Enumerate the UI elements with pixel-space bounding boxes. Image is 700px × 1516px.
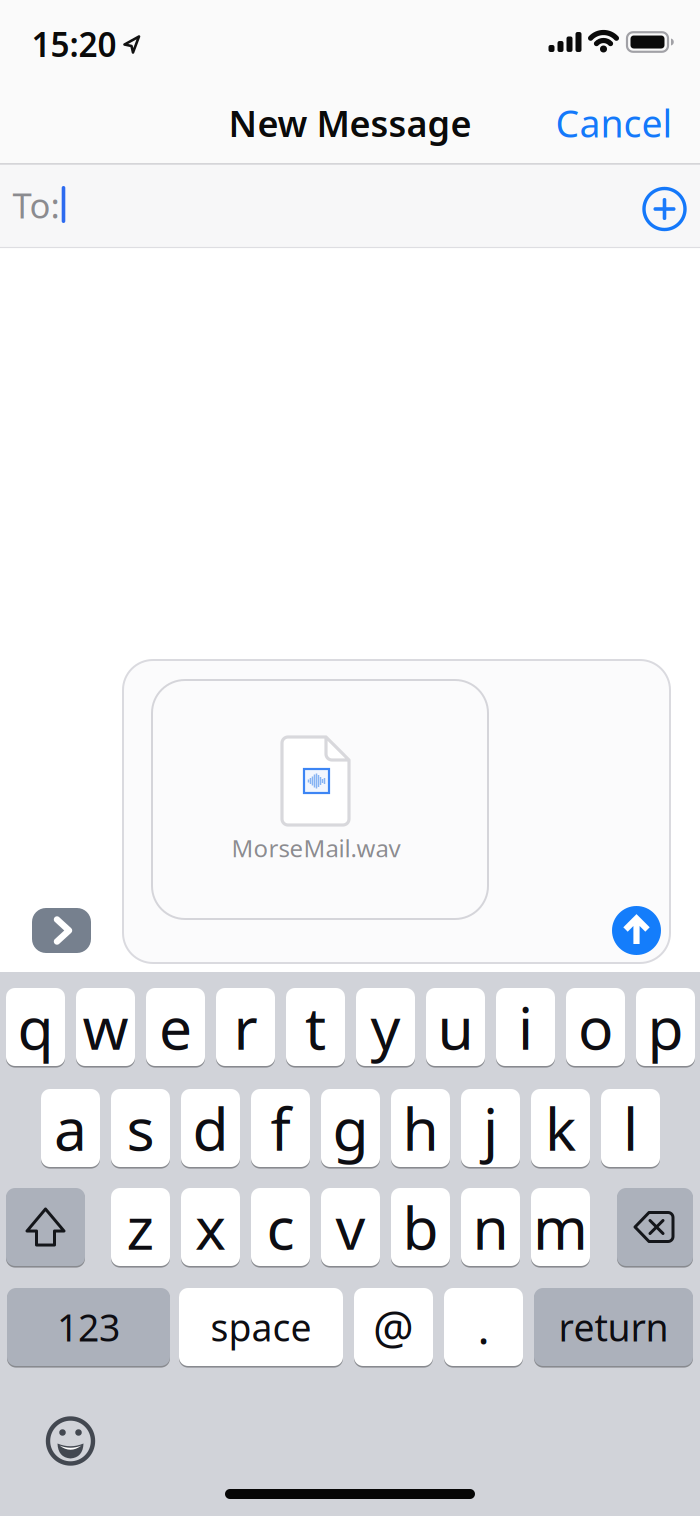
staticText: a bbox=[54, 1089, 87, 1167]
button[interactable]: Expand bbox=[32, 908, 91, 953]
staticText: z bbox=[126, 1188, 154, 1266]
staticText: g bbox=[332, 1089, 368, 1167]
button[interactable]: n bbox=[461, 1187, 520, 1267]
button[interactable]: @ bbox=[354, 1287, 433, 1367]
button[interactable]: v bbox=[321, 1187, 380, 1267]
button[interactable]: w bbox=[76, 987, 135, 1067]
staticText: MorseMail.wav bbox=[231, 832, 400, 864]
button[interactable]: s bbox=[111, 1088, 170, 1168]
staticText: r bbox=[233, 988, 257, 1066]
staticText: To: bbox=[12, 182, 59, 228]
button[interactable]: MorseMail.wav attachment bbox=[152, 680, 488, 919]
button[interactable]: Shift bbox=[6, 1187, 85, 1267]
staticText: c bbox=[266, 1188, 294, 1266]
button[interactable]: x bbox=[181, 1187, 240, 1267]
button[interactable]: b bbox=[391, 1187, 450, 1267]
button[interactable]: a bbox=[41, 1088, 100, 1168]
staticText: w bbox=[82, 988, 128, 1066]
staticText: s bbox=[126, 1089, 154, 1167]
button[interactable]: . bbox=[444, 1287, 523, 1367]
button[interactable]: h bbox=[391, 1088, 450, 1168]
button[interactable]: g bbox=[321, 1088, 380, 1168]
button[interactable]: 123 bbox=[7, 1287, 170, 1367]
button[interactable]: j bbox=[461, 1088, 520, 1168]
button[interactable]: f bbox=[251, 1088, 310, 1168]
button[interactable]: r bbox=[216, 987, 275, 1067]
staticText: o bbox=[578, 988, 613, 1066]
staticText: m bbox=[533, 1188, 588, 1266]
staticText: f bbox=[270, 1089, 290, 1167]
button[interactable]: z bbox=[111, 1187, 170, 1267]
button[interactable]: m bbox=[531, 1187, 590, 1267]
button[interactable]: t bbox=[286, 987, 345, 1067]
staticText: b bbox=[402, 1188, 438, 1266]
button[interactable]: e bbox=[146, 987, 205, 1067]
button[interactable]: o bbox=[566, 987, 625, 1067]
button[interactable]: Send bbox=[612, 906, 661, 955]
button[interactable]: Delete bbox=[617, 1187, 693, 1267]
button[interactable]: k bbox=[531, 1088, 590, 1168]
staticText: h bbox=[402, 1089, 438, 1167]
staticText: q bbox=[17, 988, 53, 1066]
staticText: p bbox=[647, 988, 683, 1066]
button[interactable]: p bbox=[636, 987, 695, 1067]
staticText: y bbox=[370, 988, 400, 1066]
button[interactable]: u bbox=[426, 987, 485, 1067]
staticText: 123 bbox=[57, 1302, 120, 1352]
staticText: k bbox=[545, 1089, 576, 1167]
staticText: t bbox=[305, 988, 326, 1066]
button[interactable]: d bbox=[181, 1088, 240, 1168]
staticText: i bbox=[518, 988, 533, 1066]
staticText: @ bbox=[373, 1297, 414, 1357]
button[interactable]: Cancel bbox=[547, 90, 680, 156]
staticText: 15:20 bbox=[31, 22, 116, 66]
button[interactable]: space bbox=[179, 1287, 343, 1367]
staticText: u bbox=[437, 988, 473, 1066]
button[interactable]: return bbox=[534, 1287, 693, 1367]
button[interactable]: i bbox=[496, 987, 555, 1067]
button[interactable]: q bbox=[6, 987, 65, 1067]
staticText: l bbox=[623, 1089, 638, 1167]
button[interactable]: l bbox=[601, 1088, 660, 1168]
button[interactable]: y bbox=[356, 987, 415, 1067]
staticText: Cancel bbox=[555, 98, 672, 148]
staticText: space bbox=[210, 1302, 311, 1352]
staticText: return bbox=[558, 1302, 668, 1352]
staticText: d bbox=[192, 1089, 228, 1167]
staticText: j bbox=[483, 1089, 498, 1167]
staticText: . bbox=[477, 1297, 489, 1357]
staticText: New Message bbox=[228, 99, 471, 147]
button[interactable]: c bbox=[251, 1187, 310, 1267]
staticText: v bbox=[335, 1188, 365, 1266]
button[interactable]: Emoji bbox=[46, 1416, 95, 1465]
button[interactable]: Add Contact bbox=[642, 187, 686, 231]
staticText: n bbox=[472, 1188, 508, 1266]
staticText: x bbox=[195, 1188, 226, 1266]
staticText: e bbox=[159, 988, 192, 1066]
